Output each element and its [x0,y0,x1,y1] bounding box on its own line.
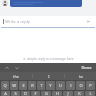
button[interactable]: S [11,91,20,96]
staticText: K [78,91,81,96]
staticText: J [67,91,69,96]
button[interactable]: Send [85,18,92,25]
button[interactable]: L [85,91,95,96]
staticText: I [48,74,50,79]
staticText: H [56,91,59,96]
button[interactable]: G [41,91,51,96]
staticText: W [12,83,16,88]
button[interactable]: U [56,81,65,90]
staticText: R [31,83,34,88]
button[interactable]: to [65,72,96,80]
button[interactable]: the [0,72,32,80]
button[interactable]: Previous [3,64,10,71]
button[interactable]: K [74,91,84,96]
button[interactable]: Next [13,64,20,71]
button[interactable]: I [66,81,75,90]
staticText: Q [3,83,7,88]
staticText: F [34,91,37,96]
button[interactable]: A [1,91,10,96]
button[interactable]: E [19,81,27,90]
button[interactable]: P [86,81,95,90]
button[interactable]: R [28,81,36,90]
button[interactable]: F [31,91,40,96]
staticText: U [59,83,62,88]
button[interactable]: Q [1,81,9,90]
button[interactable] [10,0,82,7]
staticText: Done [81,65,92,70]
button[interactable]: D [21,91,30,96]
staticText: Write a reply [5,19,30,25]
staticText: D [24,91,27,96]
staticText: a simple reply to a message here [23,57,74,61]
staticText: T [40,83,43,88]
button[interactable]: T [37,81,45,90]
staticText: O [79,83,83,88]
staticText: P [89,83,92,88]
button[interactable]: I [33,72,64,80]
staticText: Y [49,83,52,88]
button[interactable]: Profile photo [2,0,8,6]
button[interactable]: W [10,81,18,90]
staticText: E [22,83,25,88]
staticText: the [13,74,19,79]
staticText: A [4,91,7,96]
staticText: L [89,91,92,96]
button[interactable]: Y [46,81,55,90]
staticText: I [70,83,72,88]
button[interactable]: H [52,91,62,96]
button[interactable]: O [76,81,85,90]
staticText: S [14,91,17,96]
staticText: G [45,91,48,96]
button[interactable]: J [63,91,73,96]
button[interactable]: Write a reply [0,16,96,27]
staticText: to [79,74,83,79]
button[interactable]: Done [81,65,92,70]
